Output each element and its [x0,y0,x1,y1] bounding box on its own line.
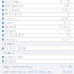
staticText: Hotspot [5,29,16,33]
staticText: PRIVACY [2,51,14,55]
button[interactable]: Hotspot [0,29,74,34]
button[interactable]: Analytics [0,60,74,64]
staticText: Usage resets monthly. [2,65,32,69]
staticText: Personal Wi-Fi [5,34,24,37]
staticText: Details [63,70,72,74]
staticText: Add [64,4,70,8]
button[interactable]: Cell Usage [0,0,74,4]
staticText: Off [66,29,70,33]
staticText: On [66,13,70,16]
staticText: SOFTWARE [2,42,14,46]
button[interactable]: Roaming [0,17,74,21]
staticText: Default [60,17,70,20]
button[interactable]: Add Account [0,4,74,8]
staticText: Version Update [5,47,27,50]
staticText: 12.1 GB [60,65,72,69]
staticText: 5G Auto [58,25,70,29]
button[interactable]: Wi-Fi Calling [0,13,74,17]
staticText: Wi-Fi Assist [5,8,19,12]
staticText: Carrier [5,21,14,24]
staticText: Add Account [5,4,23,8]
staticText: Network [5,25,16,29]
button[interactable]: Wi-Fi Assist [0,8,74,13]
button[interactable]: SIM Status [0,38,74,42]
staticText: 847 MB [59,0,70,3]
button[interactable]: Details [63,70,72,74]
staticText: Wi-Fi Calling [5,13,22,16]
staticText: mobile data plans [27,70,51,74]
button[interactable]: Location Data [0,55,74,60]
staticText: Auto [63,21,70,24]
staticText: SIM Status [5,38,17,41]
staticText: Learn more about [2,70,26,74]
staticText: Active [62,38,70,41]
button[interactable]: Network [0,25,74,29]
staticText: Roaming [5,17,17,20]
button[interactable]: mobile data plans [27,70,51,74]
staticText: Cell Usage [5,0,20,3]
button[interactable]: Carrier [0,21,74,25]
staticText: Analytics [5,60,16,63]
staticText: Enable [61,8,70,12]
button[interactable]: Personal Wi-Fi [0,34,74,38]
staticText: On [66,34,70,37]
button[interactable]: Version Update [0,47,74,51]
staticText: Location Data [5,55,22,59]
